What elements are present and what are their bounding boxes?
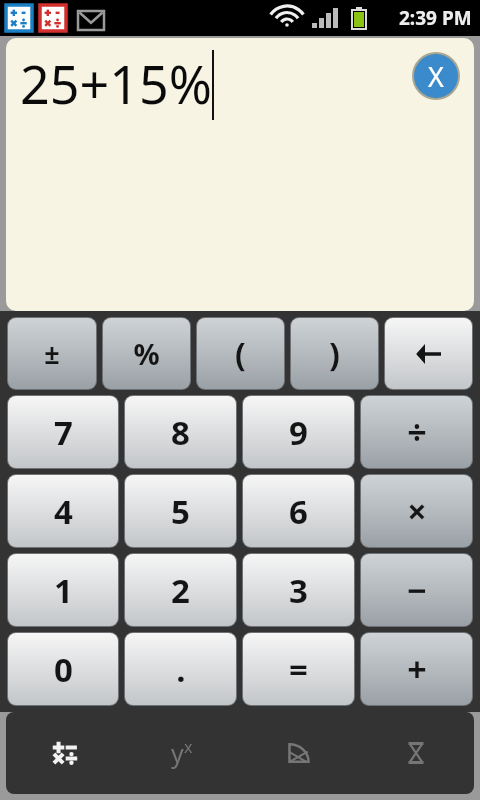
staticText: X (428, 58, 444, 95)
staticText: 25+15% (20, 48, 212, 119)
staticText: y (171, 736, 184, 770)
button[interactable]: 2 (125, 554, 236, 626)
staticText: 8 (171, 410, 190, 455)
button[interactable]: × (361, 475, 472, 547)
button[interactable]: Geometry (240, 712, 357, 794)
staticText: × (407, 488, 427, 534)
staticText: 7 (54, 410, 73, 455)
staticText: ÷ (407, 409, 427, 455)
staticText: 1 (54, 568, 73, 613)
button[interactable]: 5 (125, 475, 236, 547)
staticText: % (133, 334, 160, 373)
staticText: 3 (289, 568, 308, 613)
staticText: 9 (289, 410, 308, 455)
button[interactable]: 9 (243, 396, 354, 468)
staticText: = (289, 647, 308, 692)
button[interactable]: + (361, 633, 472, 705)
button[interactable]: ± (8, 318, 96, 389)
staticText: 2 (171, 568, 190, 613)
button[interactable]: 3 (243, 554, 354, 626)
button[interactable]: 0 (8, 633, 118, 705)
staticText: 4 (54, 489, 73, 534)
staticText: ± (44, 335, 60, 372)
staticText: + (407, 646, 427, 692)
staticText: ) (329, 332, 340, 376)
staticText: ( (235, 332, 246, 376)
button[interactable]: 4 (8, 475, 118, 547)
button[interactable]: 1 (8, 554, 118, 626)
button[interactable]: ( (197, 318, 284, 389)
staticText: x (184, 736, 193, 758)
staticText: 0 (54, 647, 73, 692)
staticText: . (176, 647, 186, 692)
button[interactable]: . (125, 633, 236, 705)
button[interactable]: ÷ (361, 396, 472, 468)
staticText: 2:39 PM (399, 5, 472, 31)
button[interactable]: ) (291, 318, 378, 389)
button[interactable]: % (103, 318, 190, 389)
button[interactable]: Clear (414, 54, 458, 98)
button[interactable]: Power functions (123, 712, 240, 794)
button[interactable]: = (243, 633, 354, 705)
staticText: − (407, 567, 427, 613)
staticText: 6 (289, 489, 308, 534)
button[interactable]: − (361, 554, 472, 626)
button[interactable]: 6 (243, 475, 354, 547)
staticText: 5 (171, 489, 190, 534)
button[interactable]: 8 (125, 396, 236, 468)
button[interactable]: History (357, 712, 474, 794)
button[interactable]: Basic calculator (6, 712, 123, 794)
button[interactable]: 7 (8, 396, 118, 468)
button[interactable]: Backspace (385, 318, 472, 389)
